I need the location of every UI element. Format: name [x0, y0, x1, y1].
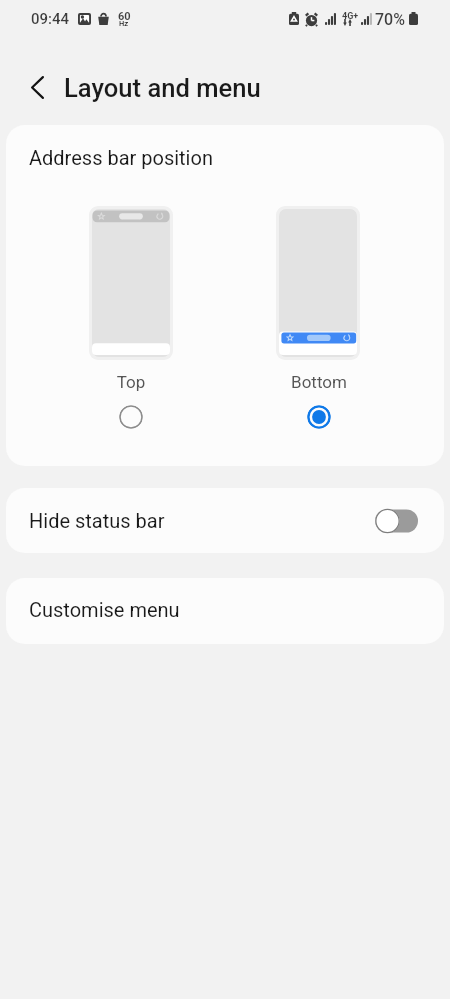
staticText: 60	[118, 10, 131, 23]
staticText: Bottom	[279, 372, 359, 392]
button[interactable]: Hide status bar	[6, 488, 444, 553]
button[interactable]: Bottom	[307, 405, 331, 429]
staticText: Top	[91, 372, 171, 392]
button[interactable]	[276, 206, 360, 360]
staticText: 70%	[375, 10, 405, 29]
button[interactable]	[89, 206, 173, 360]
staticText: Hide status bar	[29, 509, 165, 532]
button[interactable]: Customise menu	[6, 578, 444, 644]
staticText: Customise menu	[29, 598, 180, 621]
staticText: 4G+	[342, 11, 359, 22]
button[interactable]: Navigate up	[16, 66, 58, 108]
staticText: Hz	[119, 19, 129, 28]
staticText: Layout and menu	[64, 73, 261, 103]
button[interactable]: Top	[119, 405, 143, 429]
staticText: Address bar position	[29, 146, 213, 169]
staticText: 09:44	[31, 10, 70, 28]
